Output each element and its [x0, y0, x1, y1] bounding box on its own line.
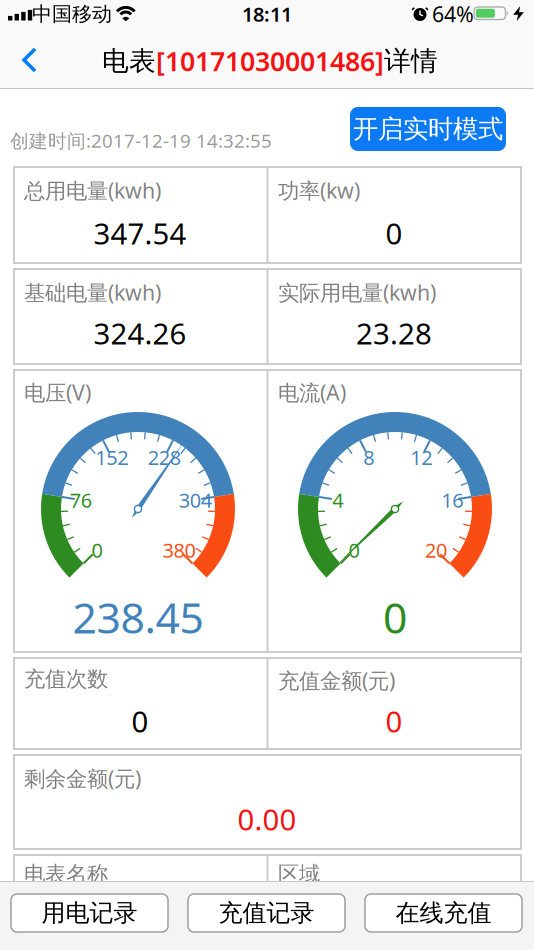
staticText: 8	[363, 444, 374, 471]
staticText: 电表名称	[24, 861, 108, 887]
staticText: 23.28	[356, 313, 432, 352]
staticText: 20	[425, 537, 447, 563]
button[interactable]: 充值记录	[188, 894, 345, 932]
button[interactable]: Back	[14, 40, 46, 80]
staticText: 电压(V)	[24, 378, 91, 406]
button[interactable]: 在线充值	[365, 894, 522, 932]
button[interactable]: 开启实时模式	[350, 107, 506, 151]
staticText: 152	[95, 444, 128, 471]
staticText: 电流(A)	[278, 378, 346, 406]
staticText: 64%	[432, 0, 474, 28]
staticText: 380	[162, 537, 195, 563]
staticText: 4	[332, 487, 343, 513]
staticText: 76	[70, 487, 92, 513]
staticText: 总用电量(kwh)	[24, 176, 161, 204]
staticText: 347.54	[93, 213, 186, 252]
staticText: 0.00	[237, 799, 296, 838]
staticText: 基础电量(kwh)	[24, 278, 161, 306]
staticText: 304	[179, 487, 212, 513]
staticText: 16	[441, 487, 463, 513]
staticText: 用电记录	[41, 898, 137, 928]
staticText: 在线充值	[395, 898, 491, 928]
staticText: 中国移动	[32, 2, 112, 26]
staticText: 详情	[384, 45, 438, 77]
staticText: 324.26	[93, 313, 186, 352]
staticText: 18:11	[242, 1, 292, 27]
staticText: 创建时间:2017-12-19 14:32:55	[10, 128, 272, 153]
staticText: 238.45	[72, 589, 203, 645]
staticText: 开启实时模式	[353, 113, 503, 144]
button[interactable]: 用电记录	[11, 894, 168, 932]
staticText: [10171030001486]	[156, 43, 384, 79]
staticText: 0	[91, 537, 102, 563]
staticText: 功率(kw)	[278, 176, 360, 204]
staticText: 充值记录	[218, 898, 314, 928]
staticText: 区域	[278, 861, 320, 887]
staticText: 剩余金额(元)	[24, 764, 141, 792]
staticText: 0	[131, 701, 148, 740]
staticText: 充值次数	[24, 666, 108, 692]
staticText: 0	[348, 537, 359, 563]
staticText: 实际用电量(kwh)	[278, 278, 436, 306]
staticText: 0	[385, 701, 402, 740]
staticText: 12	[410, 444, 432, 471]
staticText: 228	[148, 444, 181, 471]
staticText: 充值金额(元)	[278, 666, 395, 694]
staticText: 0	[383, 589, 407, 645]
staticText: 电表	[102, 45, 156, 77]
staticText: 0	[385, 213, 402, 252]
